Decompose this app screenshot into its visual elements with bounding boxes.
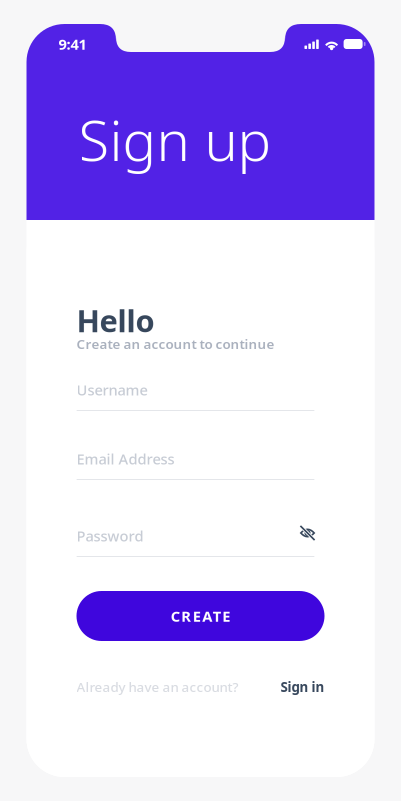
staticText: Hello [76,300,154,341]
staticText: Sign up [78,102,271,176]
button[interactable]: CREATE [76,591,324,641]
staticText: Sign in [280,678,324,696]
staticText: Email Address [76,449,174,468]
staticText: Create an account to continue [76,335,274,353]
button[interactable]: Show password [76,526,106,552]
staticText: CREATE [171,606,230,626]
button[interactable]: Sign in [280,678,324,696]
staticText: Password [76,526,143,545]
staticText: 9:41 [58,34,86,54]
staticText: Already have an account? [76,678,238,696]
staticText: Username [76,380,147,399]
